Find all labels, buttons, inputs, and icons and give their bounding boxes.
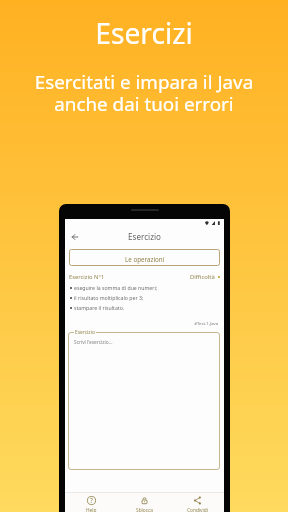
staticText: Difficoltà (190, 273, 215, 281)
staticText: Condividi (187, 507, 208, 512)
staticText: il risultato moltiplicalo per 3; (74, 294, 144, 301)
button[interactable]: Le operazioni (69, 249, 220, 266)
staticText: ? (90, 496, 93, 505)
button[interactable]: Sblocca (118, 493, 171, 512)
button[interactable]: Back (72, 234, 78, 240)
staticText: Le operazioni (125, 255, 165, 264)
staticText: Scrivi l'esercizio... (74, 339, 113, 346)
staticText: Esercizi (95, 14, 193, 52)
button[interactable]: Condividi (171, 493, 224, 512)
staticText: Esercizio (65, 231, 224, 242)
button[interactable]: ? (65, 493, 118, 512)
staticText: Esercizio (75, 329, 95, 336)
staticText: Help (86, 507, 97, 512)
staticText: Sblocca (136, 507, 154, 512)
staticText: Esercitati e impara il Java anche dai tu… (0, 69, 288, 117)
staticText: Esercizio N°1 (69, 273, 105, 281)
staticText: #Test-1-Java (65, 321, 218, 327)
staticText: eseguire la somma di due numeri; (74, 284, 158, 291)
staticText: stampare il risultato. (74, 304, 125, 311)
